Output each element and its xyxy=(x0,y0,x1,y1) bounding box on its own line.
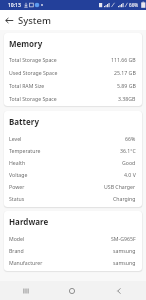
staticText: 4.0 V xyxy=(124,171,136,178)
staticText: 25.17 GB xyxy=(114,69,136,76)
button[interactable]: Model xyxy=(4,232,142,244)
button[interactable]: Manufacturer xyxy=(4,256,142,268)
button[interactable]: Voltage xyxy=(4,168,142,180)
staticText: Model xyxy=(9,235,25,242)
staticText: Total Storage Space xyxy=(9,56,57,63)
staticText: 36.1°C xyxy=(120,147,136,154)
button[interactable]: Power xyxy=(4,180,142,192)
staticText: USB Charger xyxy=(104,183,136,190)
staticText: Used Storage Space xyxy=(9,69,58,76)
staticText: Brand xyxy=(9,247,24,254)
button[interactable]: Back xyxy=(0,10,18,30)
button[interactable]: Total Storage Space xyxy=(4,53,142,66)
staticText: Status xyxy=(9,195,25,202)
staticText: Good xyxy=(122,159,136,166)
button[interactable]: Health xyxy=(4,156,142,168)
staticText: Memory xyxy=(9,38,43,49)
button[interactable]: Level xyxy=(4,132,142,144)
staticText: Hardware xyxy=(9,216,49,227)
staticText: samsung xyxy=(113,259,136,266)
button[interactable]: Back xyxy=(92,281,146,300)
staticText: Total Storage Space xyxy=(9,95,57,102)
staticText: 3.38GB xyxy=(118,95,136,102)
staticText: Voltage xyxy=(9,171,28,178)
staticText: Manufacturer xyxy=(9,259,43,266)
button[interactable]: Used Storage Space xyxy=(4,66,142,79)
button[interactable]: Temperature xyxy=(4,144,142,156)
staticText: 66% xyxy=(129,2,139,8)
staticText: SM-G965F xyxy=(111,235,136,242)
button[interactable]: Total RAM Size xyxy=(4,79,142,92)
staticText: 66% xyxy=(125,135,136,142)
staticText: 5.89 GB xyxy=(117,82,136,89)
staticText: Level xyxy=(9,135,22,142)
staticText: Health xyxy=(9,159,26,166)
button[interactable]: Total Storage Space xyxy=(4,92,142,105)
button[interactable]: Recents xyxy=(0,281,51,300)
staticText: Power xyxy=(9,183,25,190)
button[interactable]: Status xyxy=(4,192,142,204)
staticText: System xyxy=(18,14,51,27)
staticText: Temperature xyxy=(9,147,41,154)
staticText: samsung xyxy=(113,247,136,254)
staticText: Charging xyxy=(113,195,136,202)
button[interactable]: Home xyxy=(51,281,92,300)
staticText: 111.66 GB xyxy=(111,56,136,63)
staticText: Battery xyxy=(9,116,39,127)
staticText: Total RAM Size xyxy=(9,82,45,89)
staticText: 10:13 xyxy=(8,2,21,9)
button[interactable]: Brand xyxy=(4,244,142,256)
